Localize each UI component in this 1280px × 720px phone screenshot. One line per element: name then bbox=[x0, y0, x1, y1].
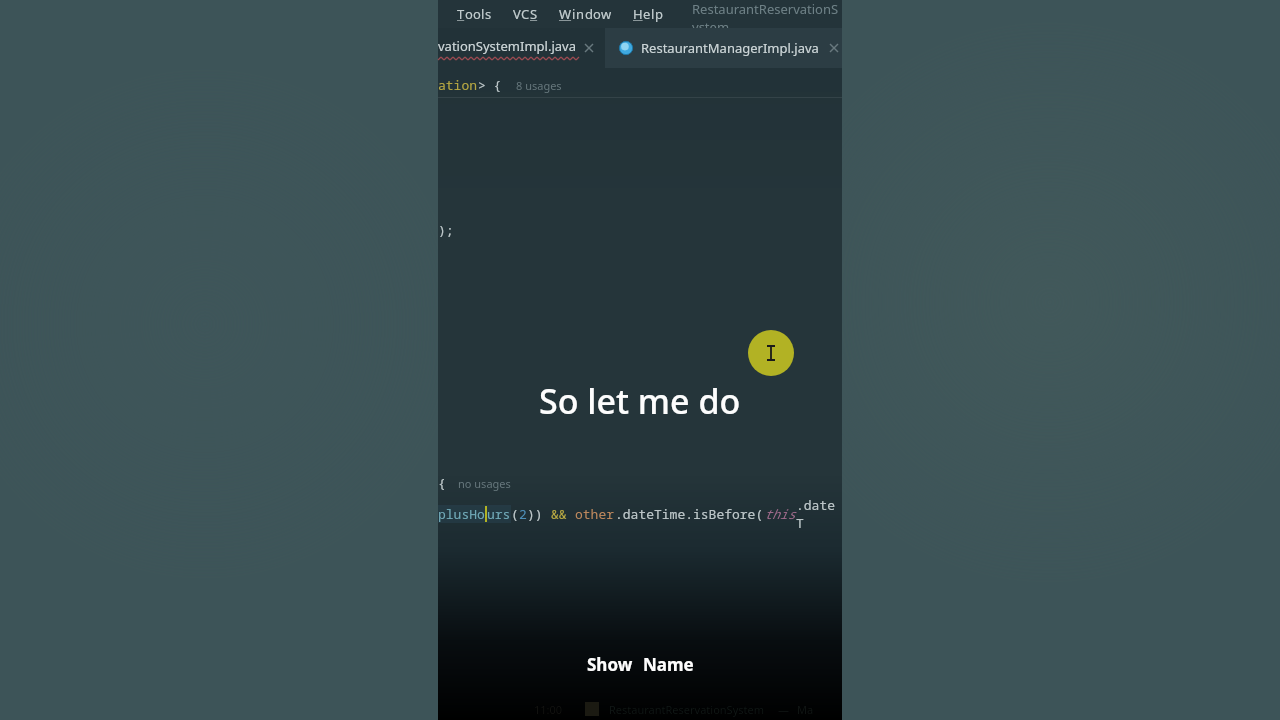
button[interactable]: Text cursor handle bbox=[748, 330, 794, 376]
staticText: .dateTime.isBefore( bbox=[615, 505, 764, 523]
button[interactable]: W bbox=[552, 2, 619, 26]
staticText: o bbox=[473, 5, 481, 23]
staticText: && bbox=[551, 505, 575, 523]
button[interactable]: T bbox=[450, 2, 499, 26]
staticText: { bbox=[438, 474, 446, 492]
button[interactable]: Close tab bbox=[582, 41, 596, 55]
staticText: l bbox=[481, 5, 485, 23]
staticText: ( bbox=[511, 505, 519, 523]
staticText: no usages bbox=[458, 476, 511, 491]
staticText: V bbox=[513, 5, 521, 23]
staticText: ation bbox=[438, 76, 478, 94]
staticText: 8 usages bbox=[516, 78, 562, 93]
staticText: .dateT bbox=[796, 496, 842, 532]
staticText: W bbox=[559, 5, 572, 23]
staticText: ); bbox=[438, 221, 454, 239]
staticText: H bbox=[633, 5, 643, 23]
staticText: i bbox=[572, 5, 576, 23]
staticText: So let me do bbox=[539, 378, 741, 424]
staticText: )) bbox=[527, 505, 551, 523]
staticText: T bbox=[457, 5, 465, 23]
staticText: vationSystemImpl.java bbox=[438, 37, 576, 55]
staticText: s bbox=[485, 5, 492, 23]
staticText: 11:00 bbox=[534, 702, 563, 717]
staticText: 2 bbox=[519, 505, 527, 523]
button[interactable]: V bbox=[506, 2, 545, 26]
staticText: plusHo bbox=[438, 505, 485, 523]
staticText: — bbox=[778, 702, 789, 717]
staticText: p bbox=[655, 5, 663, 23]
staticText: RestaurantReservationSystem bbox=[609, 702, 764, 717]
staticText: o bbox=[593, 5, 601, 23]
button[interactable]: RestaurantManagerImpl.java bbox=[605, 28, 842, 68]
button[interactable]: Close tab bbox=[827, 41, 841, 55]
staticText: other bbox=[575, 505, 615, 523]
staticText: RestaurantManagerImpl.java bbox=[641, 39, 819, 57]
staticText: d bbox=[585, 5, 593, 23]
staticText: Name bbox=[643, 653, 694, 676]
staticText: o bbox=[465, 5, 473, 23]
staticText: e bbox=[643, 5, 651, 23]
staticText: this bbox=[764, 505, 796, 523]
button[interactable]: H bbox=[626, 2, 670, 26]
staticText: l bbox=[651, 5, 655, 23]
button[interactable]: vationSystemImpl.java bbox=[438, 28, 605, 68]
staticText: Show bbox=[587, 653, 633, 676]
staticText: C bbox=[521, 5, 530, 23]
staticText: n bbox=[576, 5, 585, 23]
staticText: w bbox=[601, 5, 612, 23]
staticText: Ma bbox=[797, 702, 814, 717]
staticText: > { bbox=[478, 76, 502, 94]
staticText: RestaurantReservationSystem bbox=[692, 0, 842, 28]
staticText: urs bbox=[487, 505, 511, 523]
staticText: S bbox=[530, 5, 538, 23]
